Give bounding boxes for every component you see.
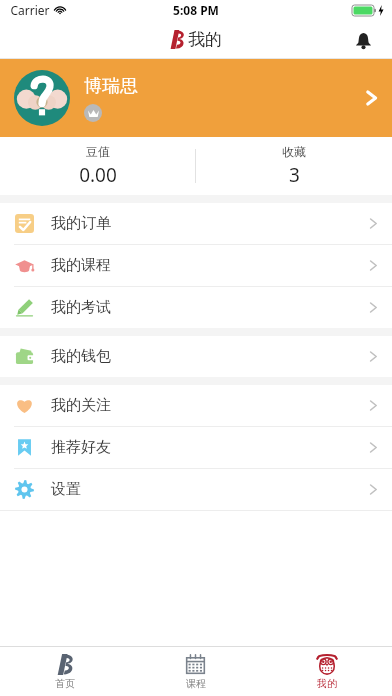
staticText: 我的课程 [51, 256, 111, 275]
staticText: 我的关注 [51, 396, 111, 415]
staticText: 设置 [51, 480, 81, 499]
staticText: 5:08 PM [173, 2, 219, 18]
staticText: 我的钱包 [51, 347, 111, 366]
staticText: 我的 [317, 677, 337, 690]
staticText: 豆值 [86, 144, 110, 159]
button[interactable]: Notifications [348, 25, 378, 55]
staticText: 0.00 [79, 162, 117, 188]
staticText: 博瑞思 [84, 75, 138, 98]
button[interactable]: 收藏 [196, 137, 392, 195]
button[interactable]: 我的 [261, 647, 392, 696]
button[interactable]: 豆值 [0, 137, 195, 195]
button[interactable]: 设置 [0, 469, 392, 510]
button[interactable]: 我的关注 [0, 385, 392, 426]
button[interactable]: 推荐好友 [0, 427, 392, 468]
staticText: 3 [289, 162, 300, 188]
button[interactable]: 博瑞思 [0, 59, 392, 137]
staticText: 收藏 [282, 144, 306, 159]
button[interactable]: 我的钱包 [0, 336, 392, 377]
button[interactable]: 我的考试 [0, 287, 392, 328]
button[interactable]: 我的课程 [0, 245, 392, 286]
staticText: 我的考试 [51, 298, 111, 317]
staticText: 课程 [186, 677, 206, 690]
staticText: Carrier [10, 2, 50, 18]
staticText: 我的 [188, 29, 222, 50]
staticText: 推荐好友 [51, 438, 111, 457]
staticText: 我的订单 [51, 214, 111, 233]
button[interactable]: 首页 [0, 647, 130, 696]
staticText: 首页 [55, 677, 75, 690]
button[interactable]: 我的订单 [0, 203, 392, 244]
button[interactable]: 课程 [130, 647, 261, 696]
